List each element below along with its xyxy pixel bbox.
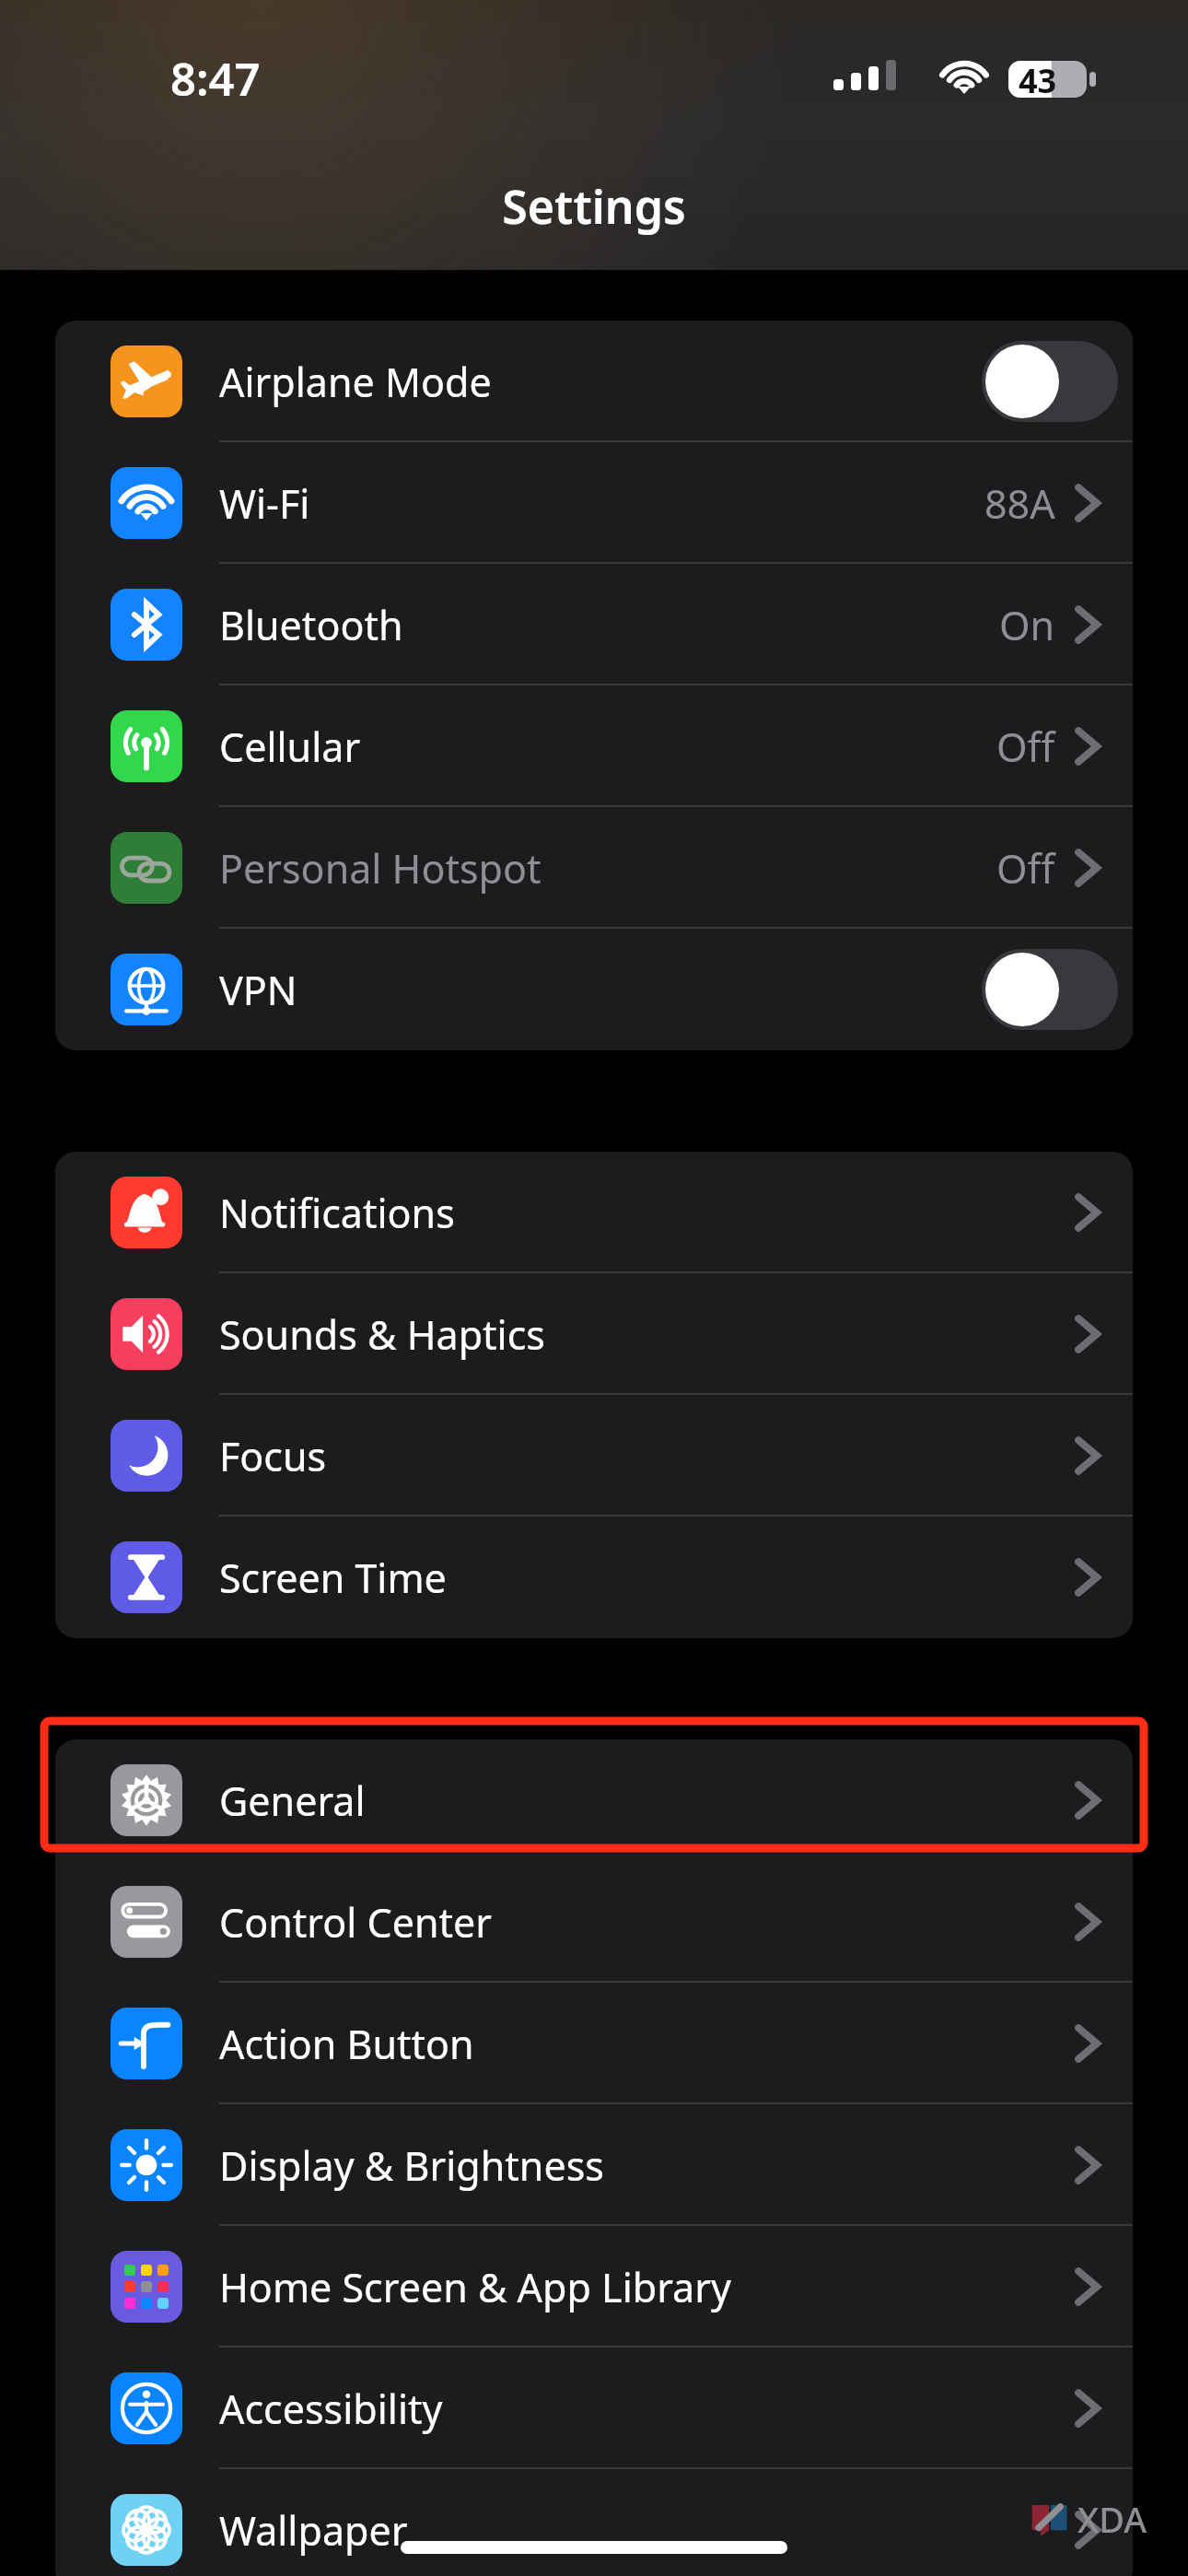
staticText: VPN: [219, 963, 297, 1017]
button[interactable]: General: [55, 1739, 1133, 1861]
staticText: Notifications: [219, 1186, 455, 1240]
button[interactable]: Airplane Mode: [55, 321, 1133, 442]
button[interactable]: Action Button: [55, 1983, 1133, 2104]
staticText: Bluetooth: [219, 598, 403, 652]
staticText: Control Center: [219, 1895, 493, 1950]
button[interactable]: Screen Time: [55, 1516, 1133, 1638]
button[interactable]: Wallpaper: [55, 2469, 1133, 2576]
staticText: Wallpaper: [219, 2503, 408, 2558]
staticText: Home Screen & App Library: [219, 2260, 731, 2314]
button[interactable]: Bluetooth: [55, 564, 1133, 685]
staticText: XDA: [1077, 2495, 1147, 2543]
staticText: Off: [996, 841, 1055, 896]
staticText: Display & Brightness: [219, 2138, 604, 2193]
staticText: 43: [1019, 58, 1057, 103]
button[interactable]: Focus: [55, 1395, 1133, 1516]
staticText: Focus: [219, 1429, 327, 1483]
button[interactable]: Accessibility: [55, 2348, 1133, 2469]
button[interactable]: VPN: [55, 929, 1133, 1050]
staticText: Off: [996, 720, 1055, 774]
staticText: Cellular: [219, 720, 361, 774]
staticText: On: [999, 598, 1055, 652]
staticText: Sounds & Haptics: [219, 1307, 545, 1362]
button[interactable]: Toggle Airplane Mode: [982, 341, 1118, 422]
staticText: Settings: [502, 175, 686, 238]
button[interactable]: Notifications: [55, 1152, 1133, 1273]
staticText: Screen Time: [219, 1551, 447, 1605]
staticText: Airplane Mode: [219, 355, 492, 409]
staticText: 88A: [984, 476, 1055, 531]
button[interactable]: Display & Brightness: [55, 2104, 1133, 2226]
staticText: Wi-Fi: [219, 476, 310, 531]
button[interactable]: Control Center: [55, 1861, 1133, 1983]
button[interactable]: Wi-Fi: [55, 442, 1133, 564]
staticText: Accessibility: [219, 2382, 443, 2436]
staticText: Personal Hotspot: [219, 841, 542, 896]
staticText: 8:47: [170, 48, 261, 110]
button[interactable]: Toggle VPN: [982, 949, 1118, 1030]
staticText: Action Button: [219, 2017, 474, 2071]
button[interactable]: Sounds & Haptics: [55, 1273, 1133, 1395]
staticText: General: [219, 1774, 366, 1828]
button[interactable]: Cellular: [55, 685, 1133, 807]
button[interactable]: Home Screen & App Library: [55, 2226, 1133, 2348]
button[interactable]: Personal Hotspot: [55, 807, 1133, 929]
